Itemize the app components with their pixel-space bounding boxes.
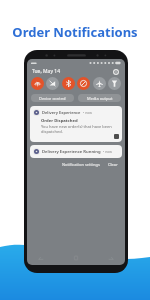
button[interactable]: Airplane mode [93, 77, 106, 90]
button[interactable]: Delivery Experience [30, 106, 122, 142]
button[interactable]: Clear [106, 161, 120, 168]
button[interactable]: Delivery Experience Running [30, 145, 122, 158]
staticText: Delivery Experience Running [42, 149, 101, 155]
button[interactable]: Mobile data [46, 77, 59, 90]
staticText: Clear [108, 162, 118, 167]
staticText: Order Dispatched [41, 118, 78, 124]
button[interactable]: Flashlight [108, 77, 121, 90]
staticText: Tue, May 14 [32, 68, 60, 75]
staticText: Order Notifications [12, 23, 138, 41]
button[interactable]: Bluetooth [62, 77, 75, 90]
button[interactable]: Settings [112, 68, 120, 76]
button[interactable]: Device control [31, 94, 74, 102]
staticText: Notification settings [62, 162, 100, 167]
staticText: Media output [87, 96, 113, 101]
staticText: • now [103, 149, 112, 154]
button[interactable]: Do not disturb [77, 77, 90, 90]
staticText: You have new order(s) that have been dis… [41, 124, 119, 134]
staticText: Delivery Experience [42, 110, 81, 115]
button[interactable]: Media output [78, 94, 121, 102]
staticText: Device control [39, 96, 66, 101]
button[interactable]: Notification settings [60, 161, 102, 168]
button[interactable]: Wi-Fi [31, 77, 44, 90]
staticText: • now [83, 110, 92, 115]
